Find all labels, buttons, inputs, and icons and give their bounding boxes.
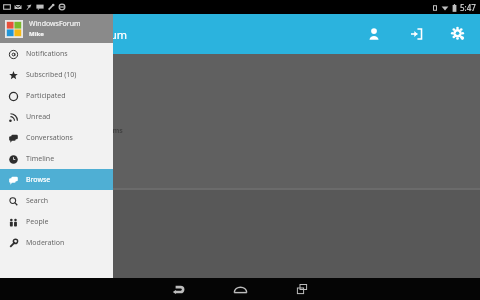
button[interactable]: Open navigation drawer [0,21,10,47]
button[interactable]: Subscribed (10) [0,64,113,85]
button[interactable]: Log in [404,22,428,46]
staticText: 5:47 [460,2,476,13]
button[interactable]: People [0,211,113,232]
staticText: WindowsForum [29,19,81,29]
staticText: People [26,217,49,227]
button[interactable]: Recent apps [287,278,317,300]
button[interactable]: Participated [0,85,113,106]
button[interactable]: Moderation [0,232,113,253]
button[interactable]: Home [225,278,255,300]
button[interactable]: Timeline [0,148,113,169]
staticText: Participated [26,91,66,101]
staticText: Conversations [26,133,73,143]
staticText: Notifications [26,49,68,59]
staticText: WindowsForum [46,27,127,42]
button[interactable]: Back [163,278,193,300]
staticText: Search [26,196,49,206]
staticText: Moderation [26,238,65,248]
button[interactable]: Conversations [0,127,113,148]
staticText: Timeline [26,154,55,164]
button[interactable]: Notifications [0,43,113,64]
button[interactable]: Account [362,22,386,46]
button[interactable]: Search [0,190,113,211]
staticText: Mike [29,30,44,38]
staticText: ums [108,126,123,136]
staticText: Subscribed (10) [26,70,77,80]
button[interactable]: WindowsForum [0,14,113,43]
button[interactable]: Browse [0,169,113,190]
staticText: Unread [26,112,51,122]
staticText: Browse [26,175,51,185]
button[interactable]: Settings [446,22,470,46]
button[interactable]: Unread [0,106,113,127]
